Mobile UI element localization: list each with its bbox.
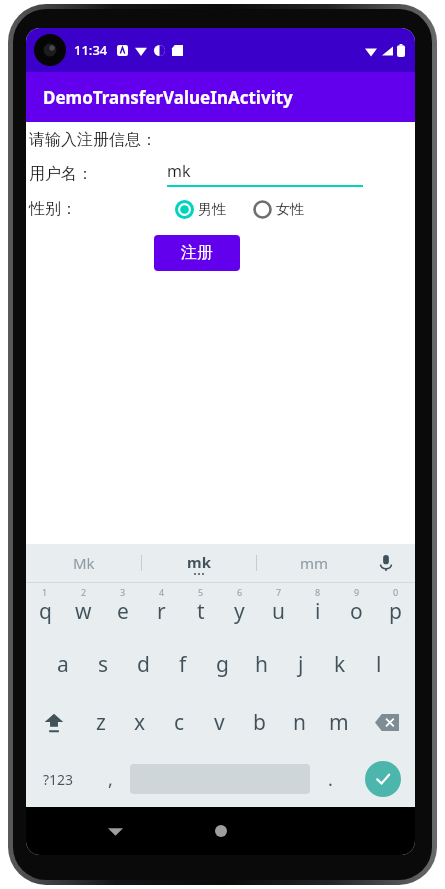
button[interactable]: 2 (64, 583, 103, 635)
staticText: f (179, 650, 187, 679)
button[interactable]: j (281, 635, 320, 693)
staticText: 注册 (181, 243, 213, 263)
button[interactable]: 3 (103, 583, 142, 635)
button[interactable]: 1 (26, 583, 64, 635)
button[interactable]: 6 (220, 583, 259, 635)
staticText: 用户名： (29, 164, 93, 184)
button[interactable]: mm (257, 544, 371, 582)
staticText: z (96, 708, 106, 737)
staticText: e (117, 597, 129, 626)
button[interactable]: n (279, 693, 319, 751)
button[interactable]: mk (142, 544, 256, 582)
staticText: mk (187, 552, 211, 572)
button[interactable]: Back (98, 814, 132, 848)
staticText: l (376, 650, 382, 679)
staticText: . (328, 767, 333, 792)
staticText: mk (167, 160, 191, 182)
button[interactable]: 7 (259, 583, 298, 635)
staticText: t (197, 597, 205, 626)
staticText: y (234, 597, 245, 626)
button[interactable]: h (242, 635, 281, 693)
staticText: m (329, 708, 349, 737)
button[interactable]: 男性 (175, 200, 226, 219)
staticText: k (334, 650, 346, 679)
staticText: 7 (276, 586, 282, 598)
staticText: j (298, 650, 304, 679)
button[interactable]: x (120, 693, 159, 751)
staticText: ?123 (43, 770, 74, 789)
staticText: DemoTransferValueInActivity (43, 86, 293, 109)
staticText: 8 (315, 586, 321, 598)
staticText: o (350, 597, 363, 626)
staticText: mm (300, 553, 329, 573)
button[interactable]: d (123, 635, 163, 693)
staticText: q (39, 597, 52, 626)
staticText: 6 (237, 586, 243, 598)
staticText: 5 (198, 586, 204, 598)
button[interactable]: 注册 (154, 235, 240, 271)
button[interactable]: 8 (298, 583, 337, 635)
button[interactable]: c (159, 693, 199, 751)
button[interactable]: 0 (376, 583, 415, 635)
button[interactable]: 4 (142, 583, 181, 635)
button[interactable]: Mk (26, 544, 141, 582)
button[interactable]: z (81, 693, 120, 751)
staticText: n (293, 708, 306, 737)
staticText: , (108, 767, 113, 792)
button[interactable]: Home (204, 814, 238, 848)
button[interactable]: . (310, 751, 350, 807)
button[interactable]: mk (167, 160, 363, 187)
staticText: 请输入注册信息： (29, 130, 157, 150)
staticText: g (216, 650, 229, 679)
button[interactable]: 女性 (253, 200, 304, 219)
staticText: 11:34 (74, 41, 108, 59)
button[interactable]: a (43, 635, 83, 693)
staticText: c (174, 708, 185, 737)
button[interactable]: Backspace (359, 693, 415, 751)
staticText: u (272, 597, 285, 626)
staticText: 性别： (29, 199, 77, 219)
staticText: 4 (159, 586, 165, 598)
staticText: w (75, 597, 92, 626)
staticText: r (157, 597, 166, 626)
button[interactable]: Voice input (371, 548, 401, 578)
button[interactable]: f (163, 635, 203, 693)
staticText: i (315, 597, 321, 626)
button[interactable]: Shift (26, 693, 81, 751)
staticText: a (57, 650, 69, 679)
staticText: 1 (42, 586, 48, 598)
staticText: 男性 (198, 201, 226, 219)
staticText: b (253, 708, 266, 737)
staticText: x (134, 708, 146, 737)
staticText: s (98, 650, 109, 679)
button[interactable]: Done (365, 761, 401, 797)
staticText: Mk (73, 553, 95, 573)
staticText: 2 (81, 586, 87, 598)
staticText: 女性 (276, 201, 304, 219)
staticText: 0 (393, 586, 399, 598)
button[interactable]: v (199, 693, 239, 751)
button[interactable]: , (90, 751, 130, 807)
staticText: h (255, 650, 268, 679)
staticText: d (137, 650, 150, 679)
staticText: 3 (120, 586, 126, 598)
button[interactable]: 5 (181, 583, 220, 635)
button[interactable]: k (320, 635, 359, 693)
button[interactable]: s (83, 635, 123, 693)
button[interactable]: b (239, 693, 279, 751)
button[interactable]: ?123 (26, 751, 90, 807)
staticText: 9 (354, 586, 360, 598)
button[interactable]: l (359, 635, 398, 693)
staticText: v (214, 708, 225, 737)
button[interactable]: m (319, 693, 359, 751)
button[interactable]: g (203, 635, 242, 693)
staticText: p (389, 597, 402, 626)
button[interactable]: 9 (337, 583, 376, 635)
